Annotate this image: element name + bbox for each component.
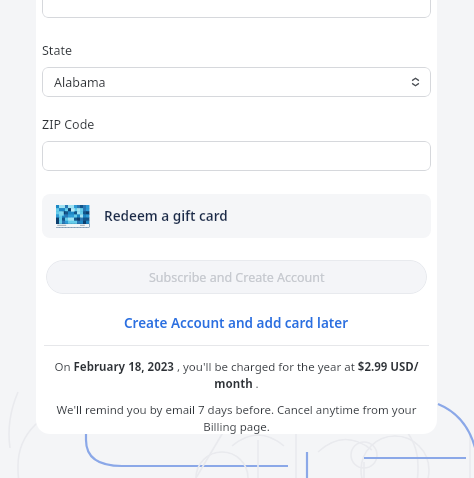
button[interactable]: Alabama xyxy=(42,67,431,97)
button[interactable]: Subscribe and Create Account xyxy=(46,260,427,294)
button[interactable]: Create Account and add card later xyxy=(42,312,431,334)
button[interactable] xyxy=(42,0,431,18)
staticText: On February 18, 2023 , you'll be charged… xyxy=(52,359,421,391)
staticText: State xyxy=(42,42,72,59)
staticText: Alabama xyxy=(54,74,106,91)
staticText: ZIP Code xyxy=(42,116,95,133)
staticText: We'll remind you by email 7 days before.… xyxy=(46,402,427,434)
staticText: Redeem a gift card xyxy=(104,207,228,225)
staticText: Subscribe and Create Account xyxy=(149,269,325,286)
button[interactable]: Redeem a gift card xyxy=(42,194,431,238)
staticText: Create Account and add card later xyxy=(124,314,349,332)
button[interactable] xyxy=(42,141,431,171)
